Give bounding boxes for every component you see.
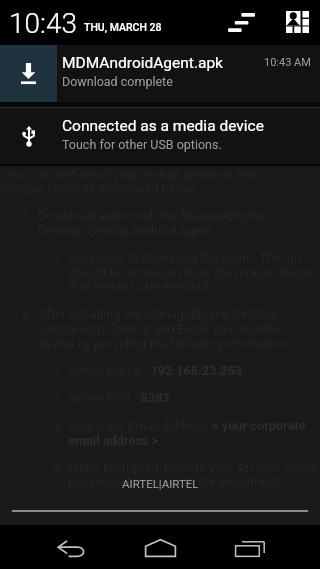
button[interactable]: Connected as a media device [0,107,320,164]
staticText: THU, MARCH 28 [84,21,162,33]
staticText: Click here to download the agent. This u… [68,250,302,265]
staticText: Connected as a media device [62,117,264,135]
button[interactable]: MDMAndroidAgent.apk [0,45,320,102]
button[interactable]: Quick settings [275,2,320,42]
staticText: When prompted, provide your AD user name [68,460,317,475]
staticText: 10:43 AM [264,56,311,69]
staticText: You can self-enroll your mobile device i… [6,167,257,182]
staticText: Server Name : 192.168.23.253 [68,363,243,378]
staticText: should be accessed from the mobile devic… [68,265,314,280]
staticText: Touch for other USB options. [62,137,222,152]
staticText: Download complete [62,74,173,89]
staticText: Server Port : 8383 [68,390,170,405]
staticText: After installing the ManageEngine Deskto… [38,306,279,321]
button[interactable]: Recent apps [235,534,265,564]
button[interactable]: Back [57,534,86,563]
staticText: MDMAndroidAgent.apk [62,54,223,72]
staticText: Download and install the ManageEngine [38,208,265,223]
staticText: Desktop Central Android Agent [38,223,213,238]
staticText: AIRTEL|AIRTEL [122,477,199,490]
staticText: Corporate Email Address < your corporate [68,418,306,433]
staticText: simple steps as mentioned below. [6,181,199,196]
button[interactable]: Home [144,532,176,564]
staticText: device by providing the following inform… [38,336,296,351]
button[interactable]: Settings [219,2,263,42]
staticText: Central App, Open it and Enroll your mob… [38,321,279,336]
staticText: email address > [68,433,159,448]
staticText: that needs to be enrolled. [68,279,212,294]
staticText: password to complete the enrollment. [68,474,283,489]
staticText: 10:43 [9,7,78,40]
